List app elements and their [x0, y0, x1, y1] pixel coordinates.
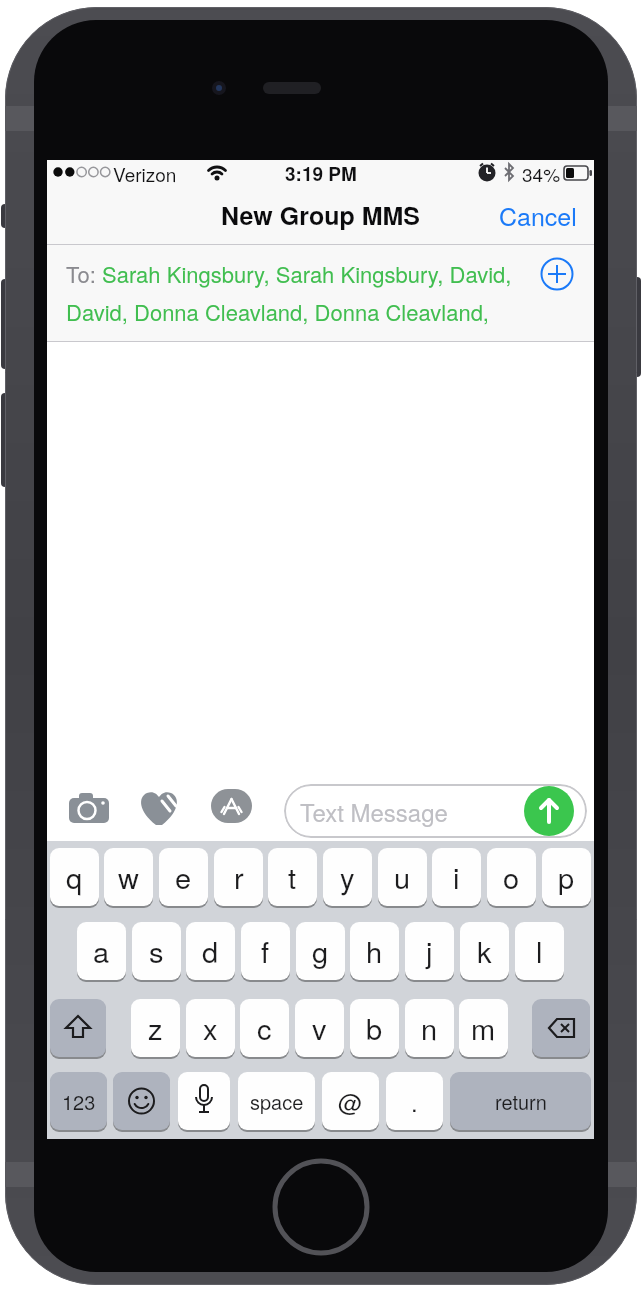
staticText: Cancel [499, 197, 577, 233]
staticText: g [312, 930, 329, 972]
button[interactable] [211, 789, 252, 823]
button[interactable] [532, 999, 590, 1057]
staticText: To: [66, 258, 102, 288]
button[interactable]: i [432, 848, 481, 906]
staticText: Sarah Kingsbury, Sarah Kingsbury, David, [102, 258, 512, 288]
staticText: return [495, 1087, 547, 1116]
staticText: a [93, 930, 110, 972]
staticText: h [366, 930, 383, 972]
button[interactable] [178, 1072, 230, 1130]
staticText: @ [338, 1084, 363, 1118]
staticText: s [149, 930, 164, 972]
staticText: o [503, 856, 520, 898]
button[interactable]: Text Message [284, 784, 587, 838]
staticText: u [394, 856, 411, 898]
button[interactable]: space [238, 1072, 315, 1130]
button[interactable] [535, 252, 579, 296]
button[interactable]: l [515, 922, 564, 980]
staticText: t [288, 856, 297, 898]
button[interactable]: m [459, 999, 508, 1057]
button[interactable]: k [460, 922, 509, 980]
staticText: r [234, 856, 244, 898]
button[interactable]: v [295, 999, 344, 1057]
button[interactable]: 123 [50, 1072, 107, 1130]
staticText: d [202, 930, 219, 972]
button[interactable]: y [323, 848, 372, 906]
staticText: Text Message [300, 794, 448, 828]
button[interactable] [65, 786, 113, 830]
button[interactable]: e [159, 848, 208, 906]
staticText: q [66, 856, 83, 898]
button[interactable]: b [350, 999, 399, 1057]
staticText: z [148, 1007, 163, 1049]
button[interactable]: o [487, 848, 536, 906]
button[interactable]: a [77, 922, 126, 980]
button[interactable]: . [386, 1072, 443, 1130]
staticText: 3:19 PM [285, 160, 357, 186]
button[interactable]: x [186, 999, 235, 1057]
button[interactable]: r [214, 848, 263, 906]
button[interactable]: Cancel [499, 197, 577, 233]
button[interactable]: c [240, 999, 289, 1057]
staticText: m [471, 1007, 496, 1049]
button[interactable] [524, 786, 574, 836]
button[interactable] [50, 999, 106, 1057]
button[interactable]: n [405, 999, 454, 1057]
button[interactable]: d [186, 922, 235, 980]
staticText: x [203, 1007, 218, 1049]
button[interactable]: t [268, 848, 317, 906]
staticText: i [453, 856, 460, 898]
staticText: f [261, 930, 270, 972]
staticText: e [175, 856, 192, 898]
button[interactable]: f [241, 922, 290, 980]
staticText: b [366, 1007, 383, 1049]
staticText: n [421, 1007, 438, 1049]
button[interactable]: j [405, 922, 454, 980]
button[interactable] [136, 785, 182, 831]
staticText: . [411, 1084, 418, 1118]
staticText: David, Donna Cleavland, Donna Cleavland, [66, 296, 489, 326]
button[interactable]: p [542, 848, 591, 906]
button[interactable]: g [296, 922, 345, 980]
button[interactable]: h [350, 922, 399, 980]
staticText: 123 [62, 1087, 96, 1116]
button[interactable]: s [132, 922, 181, 980]
staticText: c [257, 1007, 272, 1049]
button[interactable]: w [104, 848, 153, 906]
staticText: k [477, 930, 492, 972]
button[interactable] [271, 1157, 371, 1257]
staticText: j [426, 930, 433, 972]
button[interactable] [113, 1072, 170, 1130]
staticText: space [250, 1087, 304, 1116]
staticText: w [118, 856, 139, 898]
staticText: p [558, 856, 575, 898]
staticText: New Group MMS [221, 197, 421, 233]
button[interactable]: z [131, 999, 180, 1057]
staticText: v [312, 1007, 327, 1049]
button[interactable]: u [378, 848, 427, 906]
staticText: 34% [522, 160, 561, 184]
staticText: Verizon [113, 160, 177, 184]
button[interactable]: @ [322, 1072, 379, 1130]
button[interactable]: q [50, 848, 99, 906]
button[interactable]: return [450, 1072, 591, 1130]
staticText: y [340, 856, 355, 898]
staticText: l [536, 930, 543, 972]
